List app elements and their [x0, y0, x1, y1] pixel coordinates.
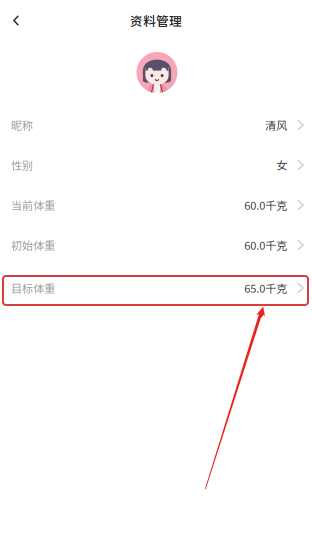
- staticText: 目标体重: [11, 280, 55, 296]
- staticText: 女: [276, 157, 287, 173]
- staticText: 昵称: [11, 117, 33, 133]
- button[interactable]: 当前体重: [0, 185, 312, 225]
- button[interactable]: 性别: [0, 145, 312, 185]
- button[interactable]: 目标体重: [0, 265, 312, 311]
- button[interactable]: 初始体重: [0, 225, 312, 265]
- button[interactable]: 昵称: [0, 105, 312, 145]
- staticText: 清风: [265, 117, 287, 133]
- button[interactable]: Back: [0, 6, 31, 35]
- staticText: 65.0千克: [244, 280, 287, 296]
- staticText: 当前体重: [11, 197, 55, 213]
- staticText: 60.0千克: [244, 197, 287, 213]
- staticText: 初始体重: [11, 237, 55, 253]
- staticText: 性别: [11, 157, 33, 173]
- staticText: 60.0千克: [244, 237, 287, 253]
- staticText: 资料管理: [130, 11, 182, 30]
